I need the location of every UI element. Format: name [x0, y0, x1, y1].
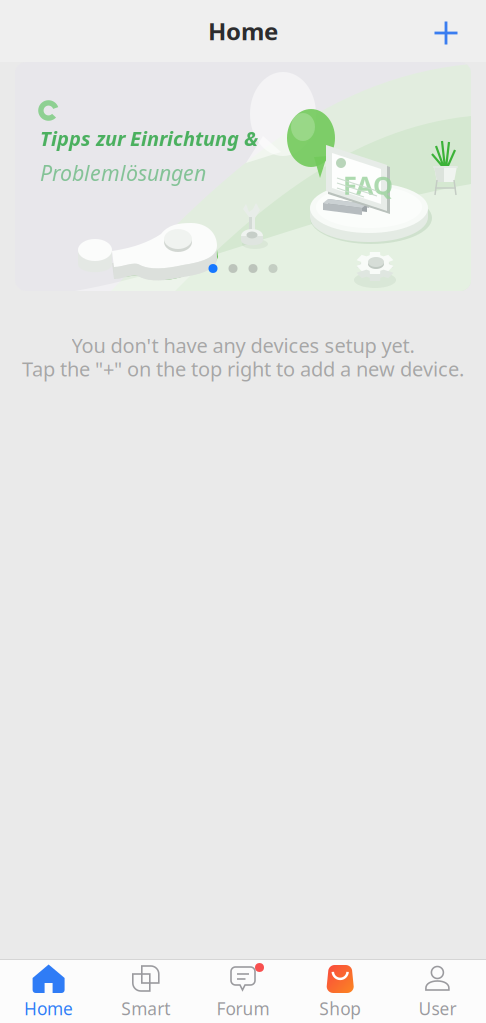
staticText: Forum [216, 997, 269, 1020]
staticText: Home [24, 997, 73, 1020]
staticText: User [418, 997, 456, 1020]
staticText: Shop [319, 997, 361, 1020]
staticText: Home [208, 15, 278, 47]
button[interactable]: Forum [194, 956, 292, 1023]
button[interactable]: Smart [97, 956, 194, 1023]
staticText: Problemlösungen [40, 159, 206, 187]
button[interactable]: Add device [419, 7, 486, 55]
staticText: Smart [121, 997, 170, 1020]
staticText: Tipps zur Einrichtung & [40, 125, 258, 152]
staticText: Tap the "+" on the top right to add a ne… [22, 356, 464, 382]
staticText: You don't have any devices setup yet. [71, 332, 414, 359]
button[interactable]: FAQ [15, 62, 471, 291]
button[interactable]: Home [0, 956, 97, 1023]
button[interactable]: User [389, 956, 486, 1023]
staticText: FAQ [343, 168, 393, 202]
button[interactable]: Shop [292, 956, 389, 1023]
